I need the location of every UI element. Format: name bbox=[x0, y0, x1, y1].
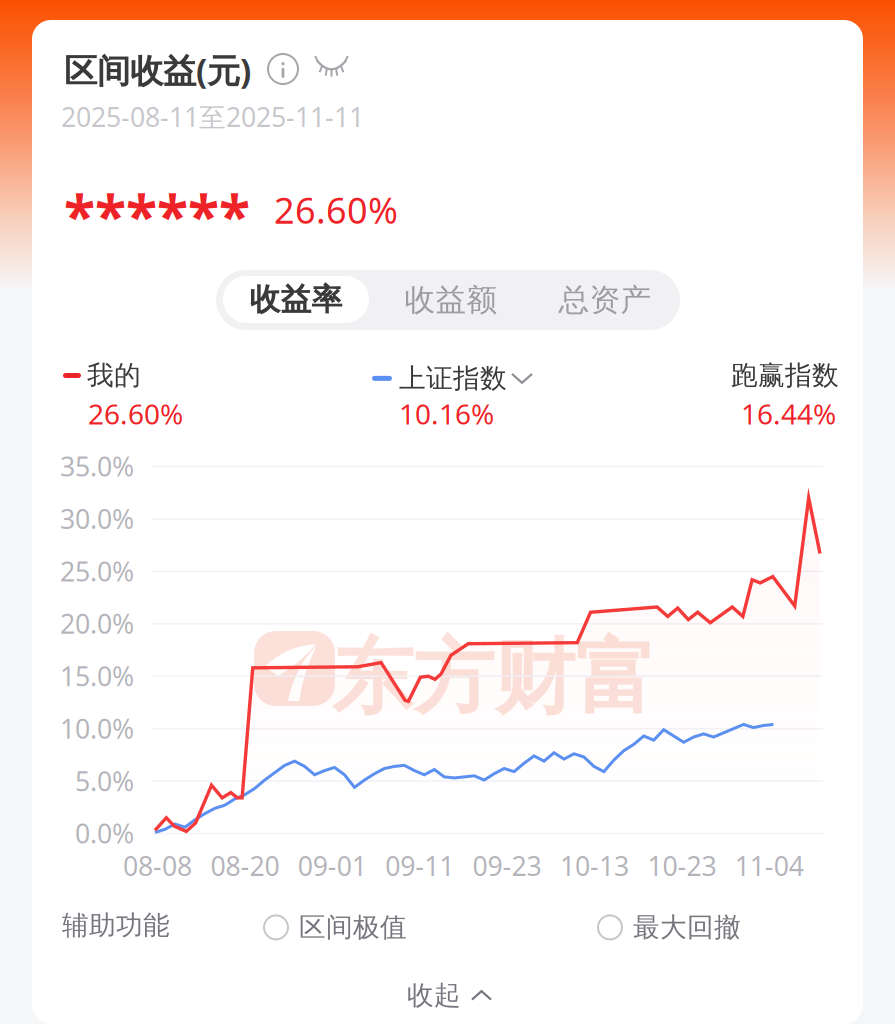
staticText: 11-04 bbox=[735, 848, 804, 883]
staticText: 30.0% bbox=[60, 501, 134, 536]
staticText: 区间收益(元) bbox=[64, 48, 251, 92]
button[interactable]: 收益额 bbox=[381, 270, 521, 330]
staticText: 我的 bbox=[87, 359, 141, 392]
staticText: 2025-08-11至2025-11-11 bbox=[61, 99, 364, 134]
staticText: ****** bbox=[64, 177, 250, 253]
staticText: 35.0% bbox=[60, 448, 134, 484]
button[interactable]: 区间收益(元) bbox=[64, 48, 251, 92]
button[interactable]: 隐藏收益 bbox=[314, 58, 349, 79]
staticText: 区间极值 bbox=[299, 911, 407, 944]
staticText: 收起 bbox=[407, 979, 461, 1012]
button[interactable]: 最大回撤 bbox=[598, 911, 741, 944]
staticText: 10-23 bbox=[647, 848, 716, 883]
staticText: 辅助功能 bbox=[62, 909, 170, 942]
staticText: 25.0% bbox=[60, 553, 134, 589]
staticText: 20.0% bbox=[60, 606, 134, 641]
staticText: 收益率 bbox=[249, 281, 342, 318]
staticText: 10.0% bbox=[60, 711, 134, 746]
staticText: 26.60% bbox=[88, 395, 183, 432]
button[interactable]: 总资产 bbox=[535, 270, 675, 330]
staticText: 上证指数 bbox=[399, 362, 507, 395]
staticText: 10-13 bbox=[560, 848, 629, 883]
staticText: 16.44% bbox=[741, 395, 836, 432]
staticText: 最大回撤 bbox=[633, 911, 741, 944]
button[interactable]: 切换对比指数 bbox=[372, 362, 533, 395]
button[interactable]: 区间极值 bbox=[264, 911, 407, 944]
button[interactable]: 收益说明 bbox=[267, 53, 299, 85]
staticText: 总资产 bbox=[558, 281, 651, 319]
staticText: 08-20 bbox=[210, 848, 279, 883]
button[interactable]: 收起 bbox=[407, 979, 492, 1012]
staticText: 09-23 bbox=[473, 848, 542, 883]
staticText: 跑赢指数 bbox=[731, 359, 839, 392]
staticText: 收益额 bbox=[404, 281, 497, 319]
staticText: 08-08 bbox=[123, 848, 192, 883]
staticText: 09-01 bbox=[298, 848, 367, 883]
staticText: 10.16% bbox=[399, 395, 494, 432]
staticText: 东方财富 bbox=[332, 628, 656, 728]
button[interactable]: 收益率 bbox=[223, 276, 369, 323]
staticText: 09-11 bbox=[385, 848, 454, 883]
staticText: 26.60% bbox=[274, 186, 398, 234]
staticText: 15.0% bbox=[60, 658, 134, 694]
staticText: 0.0% bbox=[75, 815, 134, 851]
staticText: 5.0% bbox=[75, 763, 134, 798]
